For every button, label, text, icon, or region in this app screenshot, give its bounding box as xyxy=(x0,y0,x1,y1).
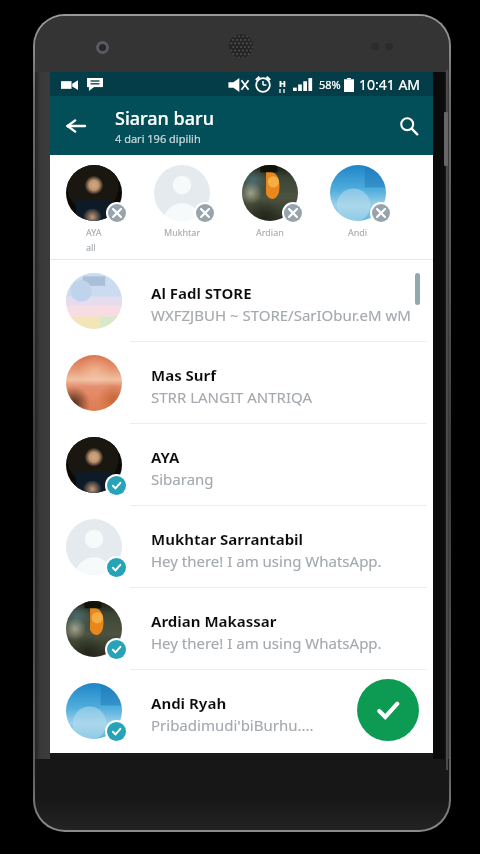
staticText: Hey there! I am using WhatsApp. xyxy=(151,551,382,571)
button[interactable]: Andi Ryah xyxy=(50,670,433,752)
button[interactable]: Back xyxy=(50,96,101,155)
button[interactable]: Search xyxy=(385,102,433,150)
staticText: 4 dari 196 dipilih xyxy=(115,131,201,146)
staticText: 10:41 AM xyxy=(359,75,421,94)
staticText: Sibarang xyxy=(151,469,214,489)
staticText: Andi Ryah xyxy=(151,693,227,713)
staticText: Andi xyxy=(348,226,368,238)
button[interactable]: Confirm selection xyxy=(357,679,419,741)
button[interactable]: Mukhtar xyxy=(138,165,226,238)
button[interactable]: AYA all xyxy=(50,165,138,253)
button[interactable]: Al Fadl STORE xyxy=(50,260,433,342)
staticText: Ardian xyxy=(256,226,284,238)
staticText: Mukhtar xyxy=(164,226,201,238)
button[interactable]: AYA xyxy=(50,424,433,506)
button[interactable]: Ardian Makassar xyxy=(50,588,433,670)
button[interactable]: Ardian xyxy=(226,165,314,238)
staticText: AYA xyxy=(151,447,180,467)
staticText: Siaran baru xyxy=(115,106,214,131)
staticText: Al Fadl STORE xyxy=(151,283,252,303)
staticText: Ardian Makassar xyxy=(151,611,277,631)
staticText: WXFZJBUH ~ STORE/SarIObur.eM wM xyxy=(151,305,411,325)
staticText: Mas Surf xyxy=(151,365,217,385)
staticText: Pribadimudi'biBurhu.... xyxy=(151,715,314,735)
staticText: AYA all xyxy=(86,226,102,253)
button[interactable]: Mukhtar Sarrantabil xyxy=(50,506,433,588)
staticText: H xyxy=(279,77,286,89)
staticText: 58% xyxy=(319,77,341,92)
button[interactable]: Mas Surf xyxy=(50,342,433,424)
staticText: Hey there! I am using WhatsApp. xyxy=(151,633,382,653)
staticText: Mukhtar Sarrantabil xyxy=(151,529,304,549)
staticText: STRR LANGIT ANTRIQA xyxy=(151,387,312,407)
button[interactable]: Andi xyxy=(314,165,402,238)
